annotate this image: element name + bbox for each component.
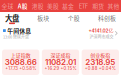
staticText: 午间休息 — [7, 26, 31, 35]
staticText: 2318.95 — [85, 57, 115, 67]
button[interactable]: 创业板指 — [82, 49, 119, 75]
button[interactable]: 上证指数 — [2, 49, 39, 75]
staticText: 科创板 — [98, 14, 116, 22]
staticText: 基金 — [62, 2, 74, 10]
staticText: 其他 — [107, 2, 119, 10]
button[interactable]: 板块 — [37, 13, 49, 24]
button[interactable]: 大盘 — [5, 13, 19, 24]
staticText: +0.88 +0.04% — [85, 66, 116, 71]
staticText: 3088.66 — [5, 57, 37, 67]
button[interactable]: 期货 — [91, 0, 106, 12]
staticText: 板块 — [37, 14, 49, 22]
button[interactable]: +4141.02亿 — [89, 27, 118, 40]
staticText: 13:00 继续开盘 — [3, 34, 29, 40]
staticText: 沪深两市成交 — [90, 34, 114, 40]
staticText: 大盘 — [5, 13, 19, 23]
staticText: 深证成指 — [50, 51, 70, 58]
button[interactable]: 美股 — [45, 0, 60, 12]
button[interactable]: 基金 — [60, 0, 76, 12]
button[interactable]: 全球 — [0, 0, 15, 12]
button[interactable]: ETF — [76, 0, 91, 12]
staticText: A股 — [18, 2, 28, 10]
staticText: 全球 — [2, 2, 14, 10]
staticText: +16.29 +0.15% — [44, 66, 76, 71]
staticText: 创业板指 — [90, 51, 110, 58]
button[interactable]: 深证成指 — [42, 49, 79, 75]
button[interactable]: A股 — [15, 0, 30, 12]
button[interactable]: 港股 — [30, 0, 45, 12]
button[interactable]: 科创板 — [98, 13, 116, 24]
button[interactable]: 个股 — [68, 13, 80, 24]
staticText: 上证指数 — [11, 51, 31, 58]
staticText: 港股 — [32, 2, 44, 10]
staticText: ETF — [79, 2, 88, 10]
staticText: +17.73 +0.58% — [5, 66, 36, 71]
staticText: 11082.01 — [45, 57, 76, 67]
staticText: 美股 — [47, 2, 59, 10]
staticText: 期货 — [92, 2, 104, 10]
staticText: +4141.02亿 — [89, 28, 114, 34]
button[interactable]: 其他 — [106, 0, 121, 12]
staticText: 个股 — [68, 14, 80, 22]
